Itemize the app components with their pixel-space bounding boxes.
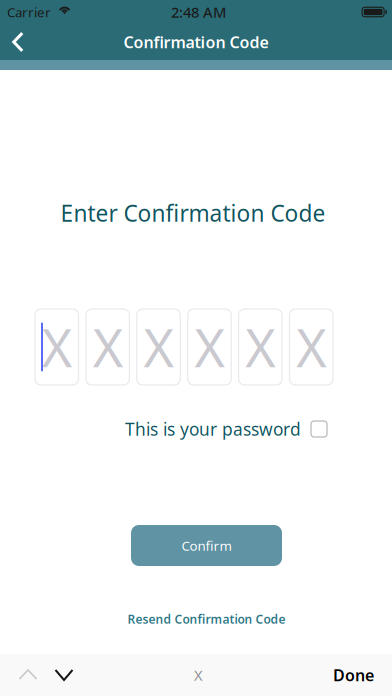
staticText: Confirmation Code bbox=[123, 31, 268, 53]
staticText: Resend Confirmation Code bbox=[127, 611, 285, 627]
staticText: 2:48 AM bbox=[171, 2, 226, 22]
staticText: X bbox=[245, 312, 275, 382]
staticText: Enter Confirmation Code bbox=[60, 198, 325, 228]
staticText: X bbox=[194, 665, 203, 685]
staticText: Carrier bbox=[7, 3, 51, 21]
staticText: X bbox=[42, 312, 72, 382]
staticText: X bbox=[296, 312, 326, 382]
button[interactable]: This is your password bbox=[121, 411, 331, 446]
staticText: Done bbox=[333, 664, 374, 686]
button[interactable]: Next bbox=[46, 654, 82, 696]
staticText: This is your password bbox=[125, 417, 301, 440]
button[interactable]: Resend Confirmation Code bbox=[121, 607, 291, 631]
button[interactable]: Back bbox=[0, 24, 36, 60]
button[interactable]: Previous bbox=[10, 654, 46, 696]
staticText: Confirm bbox=[181, 537, 231, 554]
button[interactable]: Done bbox=[315, 654, 392, 696]
button[interactable]: Confirm bbox=[131, 525, 282, 566]
staticText: X bbox=[144, 312, 174, 382]
staticText: X bbox=[194, 312, 224, 382]
staticText: X bbox=[93, 312, 123, 382]
